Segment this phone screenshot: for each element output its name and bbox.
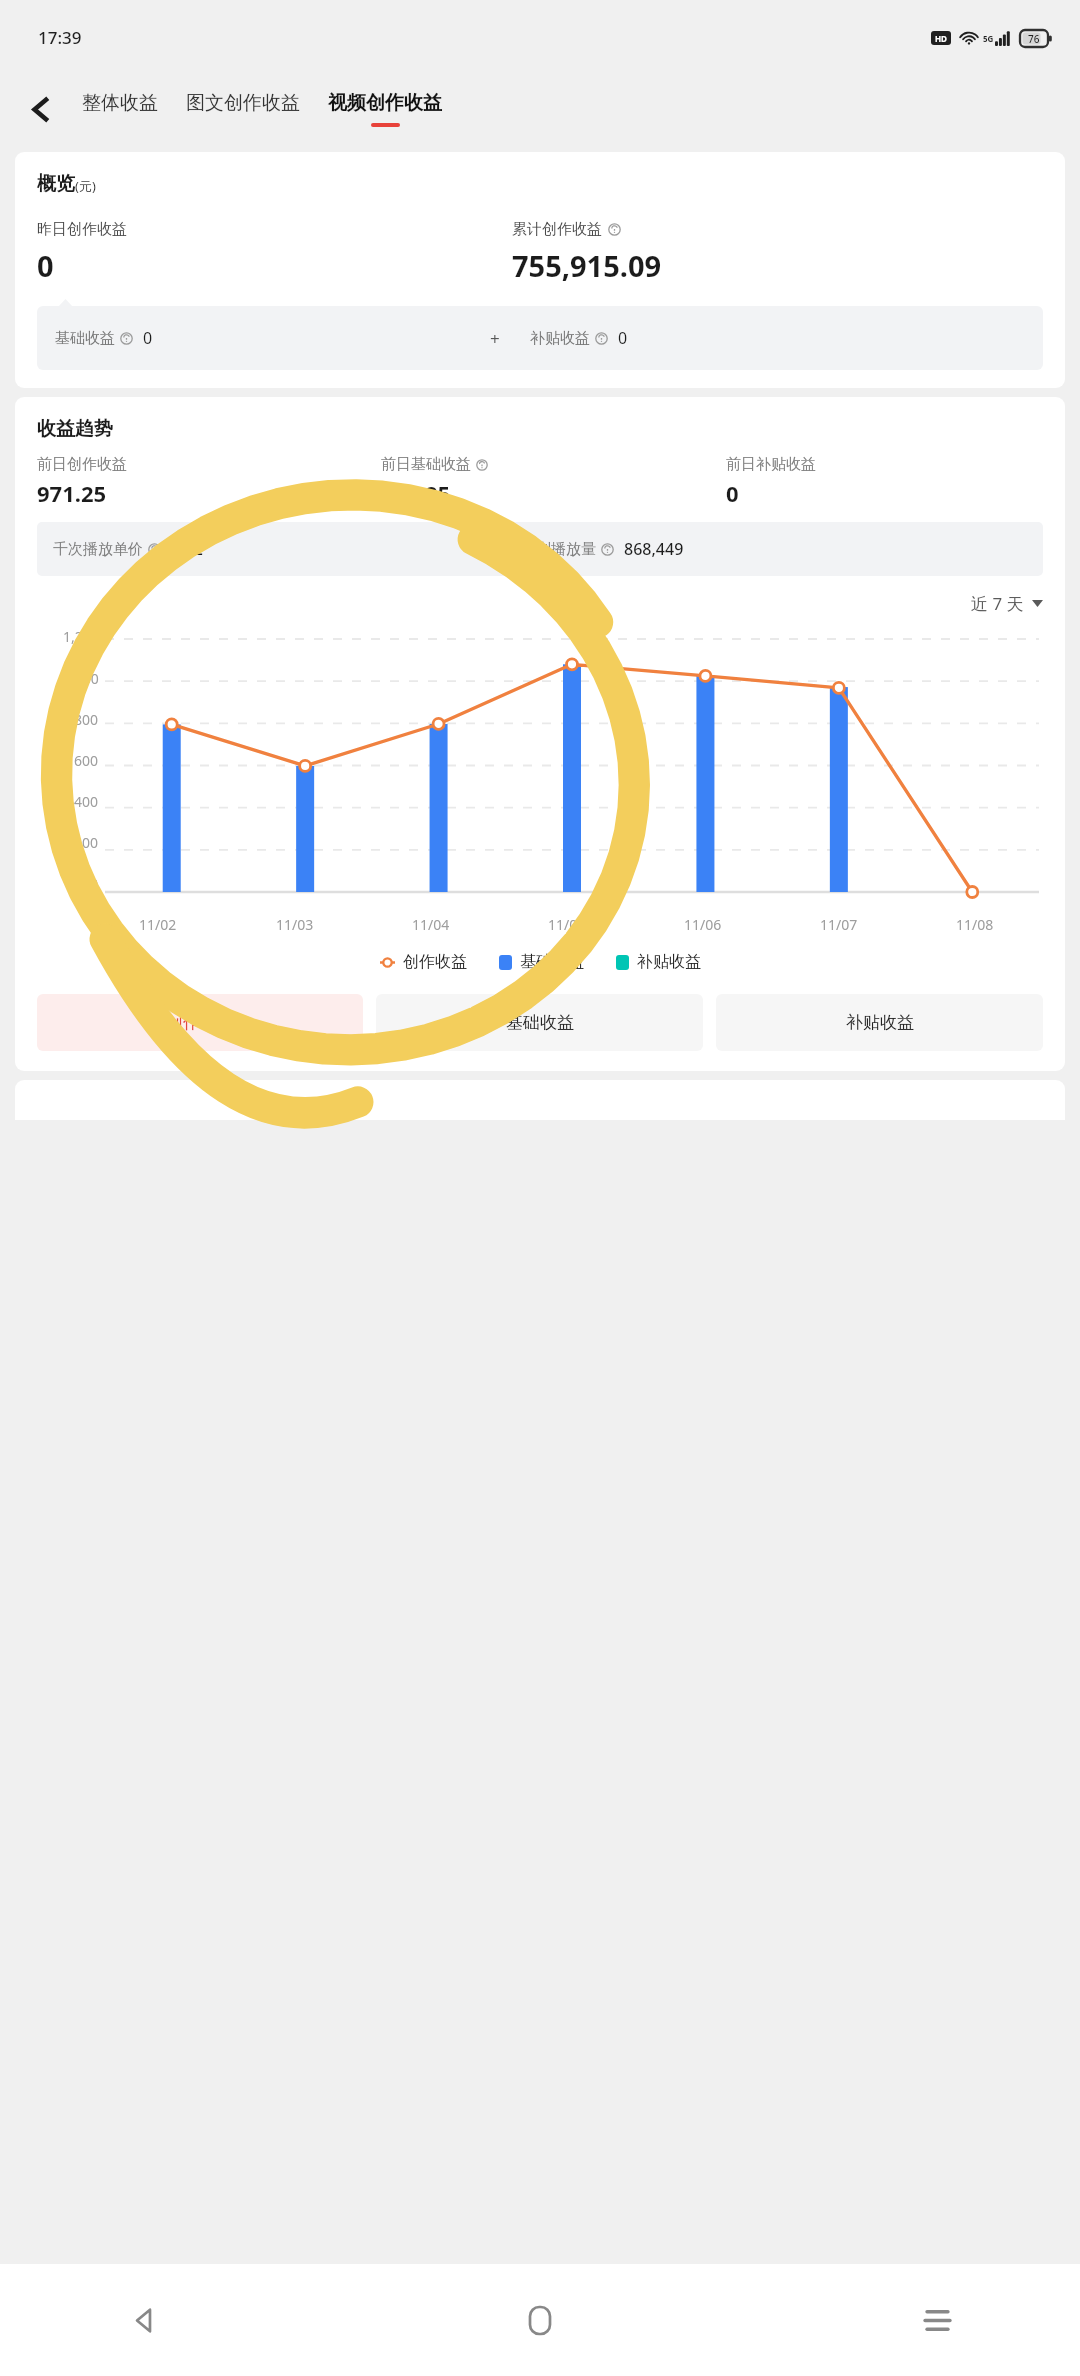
staticText: 971.25 [381, 478, 451, 508]
staticText: 获利播放量 [521, 540, 596, 559]
staticText: 0 [37, 246, 54, 285]
staticText: 整体收益 [82, 91, 158, 115]
staticText: 前日基础收益 [381, 455, 471, 474]
staticText: 11/03 [276, 915, 314, 934]
button[interactable]: Home [509, 2289, 571, 2351]
staticText: + [490, 327, 500, 350]
staticText: 补贴收益 [846, 1012, 914, 1033]
staticText: (元) [75, 177, 96, 195]
staticText: 1.12 [171, 538, 203, 560]
button[interactable]: Back [112, 2289, 174, 2351]
staticText: 600 [74, 751, 99, 769]
staticText: 千次播放单价 [53, 540, 143, 559]
staticText: 前日补贴收益 [726, 455, 816, 474]
staticText: 收益趋势 [37, 417, 113, 441]
staticText: 1,200 [63, 627, 99, 645]
staticText: 补贴收益 [637, 952, 701, 972]
button[interactable]: 整体收益 [80, 91, 160, 127]
staticText: 视频创作收益 [328, 91, 442, 115]
button[interactable]: 千次播放单价 [37, 522, 1043, 576]
staticText: 0 [143, 327, 153, 349]
button[interactable]: Back [16, 85, 64, 133]
staticText: 近 7 天 [971, 592, 1024, 615]
staticText: 400 [74, 792, 99, 810]
button[interactable]: 近 7 天 [37, 592, 1043, 615]
staticText: 11/07 [820, 915, 858, 934]
staticText: 800 [74, 710, 99, 728]
button[interactable]: 补贴收益 [716, 994, 1043, 1051]
staticText: 755,915.09 [512, 246, 662, 285]
staticText: 11/02 [139, 915, 177, 934]
button[interactable]: 基础收益 [376, 994, 703, 1051]
staticText: 创作收益 [403, 952, 467, 972]
staticText: 前日创作收益 [37, 455, 127, 474]
button[interactable]: Recent apps [906, 2289, 968, 2351]
staticText: 11/04 [412, 915, 450, 934]
staticText: 累计创作收益 [512, 220, 602, 239]
staticText: 76 [1028, 32, 1040, 46]
staticText: 概览 [37, 172, 75, 196]
staticText: 基础收益 [55, 329, 115, 348]
button[interactable]: 创作收益 [37, 994, 363, 1051]
staticText: 基础收益 [520, 952, 584, 972]
button[interactable]: 图文创作收益 [184, 91, 302, 127]
staticText: 0 [618, 327, 628, 349]
staticText: 868,449 [624, 538, 684, 560]
staticText: 昨日创作收益 [37, 220, 127, 239]
staticText: 11/08 [956, 915, 994, 934]
staticText: 11/06 [684, 915, 722, 934]
staticText: 补贴收益 [530, 329, 590, 348]
staticText: 图文创作收益 [186, 91, 300, 115]
staticText: HD [935, 33, 947, 44]
staticText: 200 [74, 833, 99, 851]
staticText: 11/05 [548, 915, 586, 934]
staticText: 1,000 [63, 669, 99, 687]
staticText: 基础收益 [506, 1012, 574, 1033]
staticText: 17:39 [38, 26, 82, 49]
staticText: 5G [983, 33, 994, 44]
staticText: 971.25 [37, 478, 107, 508]
staticText: 0 [90, 874, 99, 892]
button[interactable]: 基础收益 [37, 306, 1043, 370]
staticText: 0 [726, 478, 739, 508]
staticText: 创作收益 [166, 1012, 234, 1033]
button[interactable]: 视频创作收益 [326, 91, 444, 127]
